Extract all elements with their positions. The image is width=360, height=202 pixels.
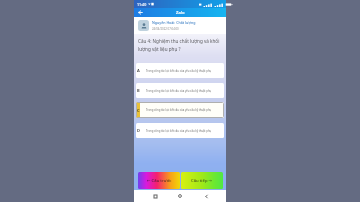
staticText: Zalo [176, 10, 185, 16]
staticText: ← Câu trước [147, 178, 172, 184]
staticText: Câu 4: Nghiệm thu chất lượng và khối lượ… [138, 38, 221, 52]
staticText: C [137, 108, 140, 113]
staticText: B [137, 88, 140, 93]
staticText: Trong công tác lực kết cấu của yêu cầu k… [146, 69, 212, 73]
staticText: Câu tiếp → [191, 178, 213, 184]
button[interactable]: Back [137, 9, 144, 16]
staticText: Trong công tác lực kết cấu của yêu cầu k… [146, 89, 212, 93]
staticText: 24/04/2022 07:04:00 [152, 27, 179, 31]
button[interactable]: B [136, 83, 224, 98]
staticText: Trong công tác lực kết cấu của yêu cầu k… [146, 108, 212, 112]
button[interactable]: A [136, 63, 224, 78]
staticText: A [137, 68, 140, 73]
button[interactable]: Back [201, 191, 211, 201]
button[interactable]: Recent apps [150, 191, 160, 201]
button[interactable]: ← Câu trước [138, 172, 180, 189]
button[interactable]: C [136, 102, 224, 118]
staticText: 11:40 [137, 2, 147, 7]
button[interactable]: Câu tiếp → [181, 172, 223, 189]
button[interactable]: Home [175, 191, 185, 201]
staticText: Nguyễn Hoài: Chất lượng [152, 20, 196, 25]
button[interactable]: D [136, 123, 224, 138]
staticText: D [137, 128, 140, 133]
staticText: Trong công tác lực kết cấu của yêu cầu k… [146, 129, 212, 133]
